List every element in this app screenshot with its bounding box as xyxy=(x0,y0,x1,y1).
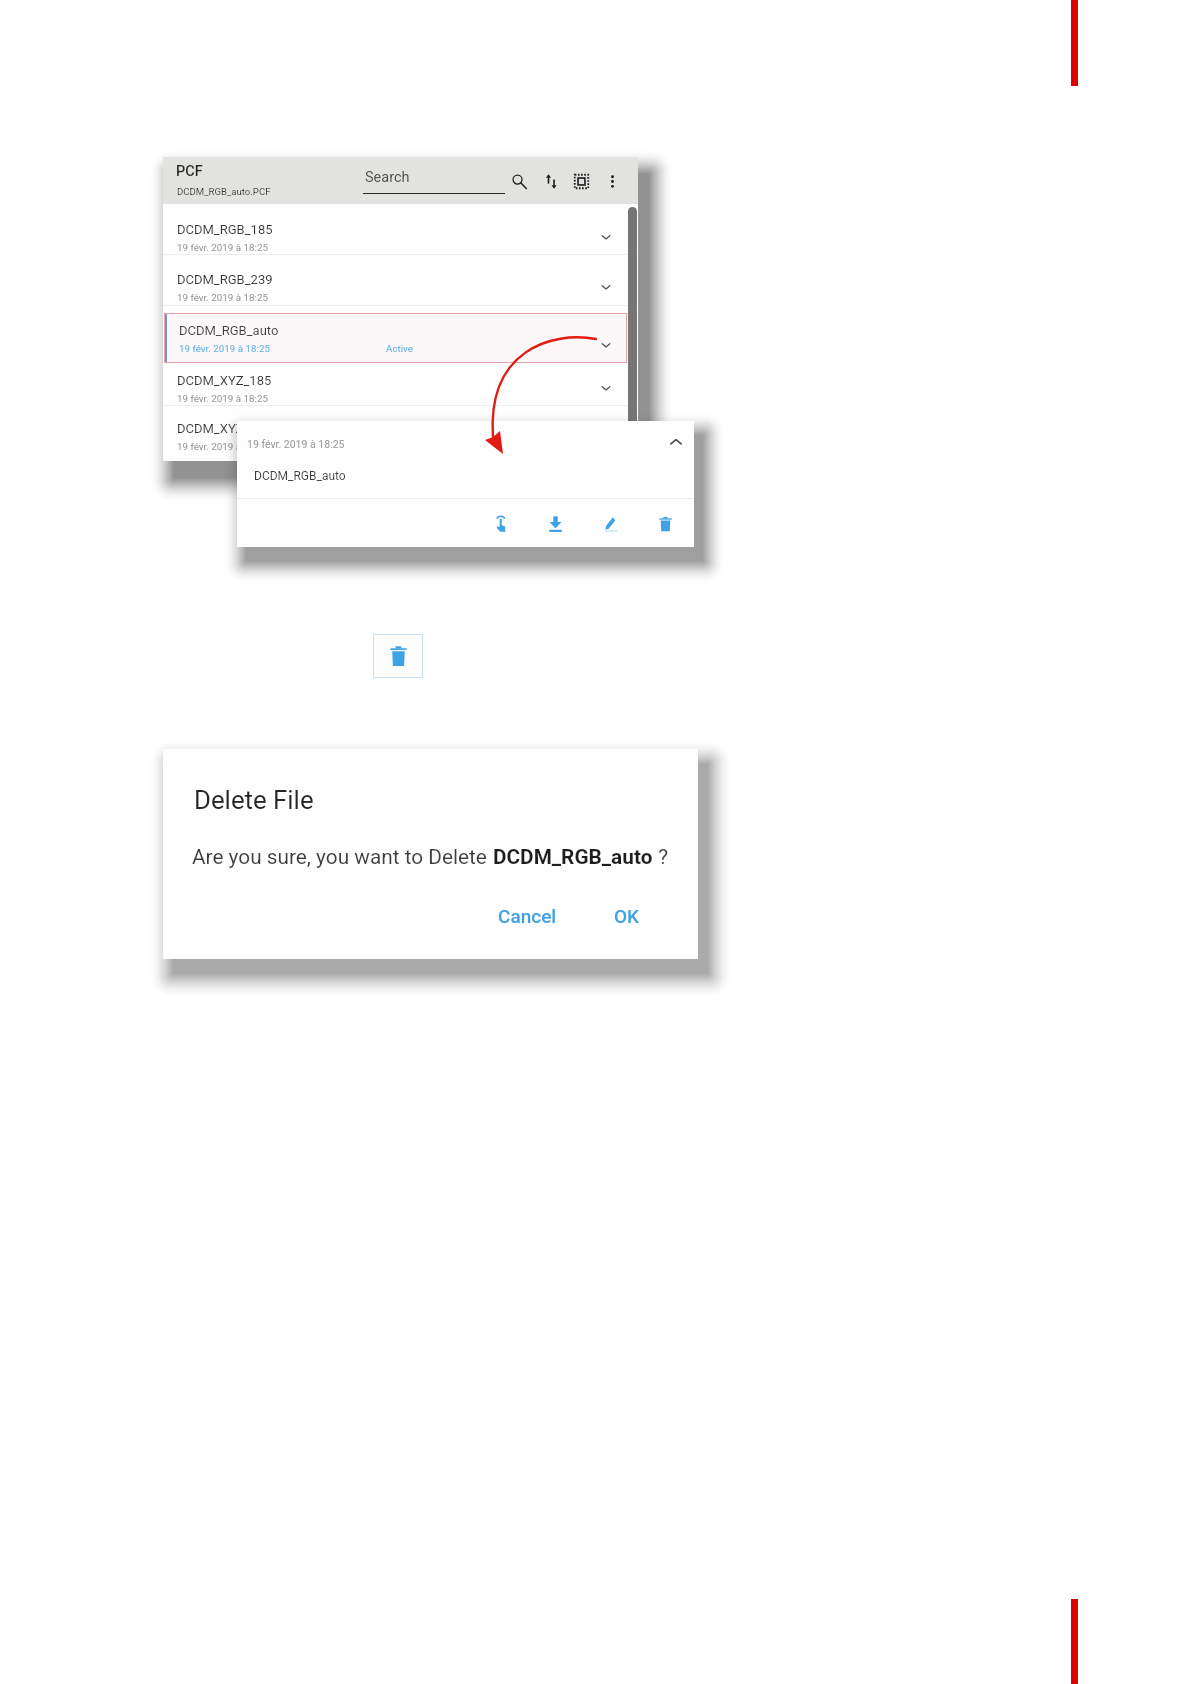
button[interactable]: DCDM_XYZ_239 xyxy=(163,403,638,454)
button[interactable]: DCDM_XYZ_185 xyxy=(163,355,638,406)
button[interactable]: Edit xyxy=(595,508,627,540)
staticText: 19 févr. 2019 à 18:25 xyxy=(177,292,268,303)
button[interactable]: Cancel xyxy=(498,905,557,927)
button[interactable]: Sort xyxy=(536,166,566,196)
staticText: DCDM_RGB_239 xyxy=(177,272,273,287)
staticText: DCDM_RGB_185 xyxy=(177,222,273,237)
button[interactable]: More options xyxy=(597,166,627,196)
button[interactable]: Delete xyxy=(373,634,423,678)
button[interactable]: Collapse xyxy=(662,428,690,456)
staticText: 19 févr. 2019 à 18:25 xyxy=(177,242,268,253)
staticText: PCF xyxy=(176,163,203,180)
staticText: 19 févr. 2019 à 18:25 xyxy=(177,441,268,452)
staticText: DCDM_RGB_auto xyxy=(254,469,346,483)
button[interactable]: OK xyxy=(614,905,640,927)
button[interactable]: Select all xyxy=(566,166,596,196)
staticText: 19 févr. 2019 à 18:25 xyxy=(177,393,268,404)
staticText: Search xyxy=(365,169,410,186)
staticText: DCDM_RGB_auto xyxy=(179,323,279,338)
staticText: Delete File xyxy=(194,785,314,815)
button[interactable]: Touch xyxy=(485,508,517,540)
staticText: OK xyxy=(614,905,640,927)
staticText: Cancel xyxy=(498,905,557,927)
staticText: 19 févr. 2019 à 18:25 xyxy=(179,343,270,354)
button[interactable]: DCDM_RGB_auto xyxy=(164,313,627,363)
button[interactable]: Download xyxy=(539,508,571,540)
staticText: Are you sure, you want to Delete xyxy=(192,845,493,869)
staticText: ? xyxy=(653,845,668,869)
button[interactable]: Delete xyxy=(649,508,681,540)
button[interactable]: Search xyxy=(504,166,534,196)
staticText: DCDM_XYZ_185 xyxy=(177,373,272,388)
button[interactable]: DCDM_RGB_239 xyxy=(163,254,638,305)
button[interactable]: DCDM_RGB_185 xyxy=(163,204,638,255)
staticText: DCDM_RGB_auto xyxy=(493,845,653,869)
staticText: Active xyxy=(386,343,413,354)
button[interactable]: Search field xyxy=(363,166,505,196)
staticText: DCDM_RGB_auto.PCF xyxy=(177,186,271,197)
staticText: 19 févr. 2019 à 18:25 xyxy=(247,438,345,450)
staticText: DCDM_XYZ_239 xyxy=(177,421,272,436)
